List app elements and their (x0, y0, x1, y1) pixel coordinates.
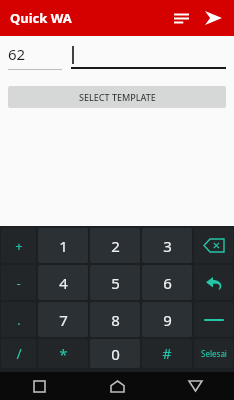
button[interactable]: Selesai (194, 339, 233, 368)
button[interactable]: Enter (194, 265, 233, 300)
button[interactable]: Send (198, 3, 228, 33)
staticText: 1 (59, 236, 68, 256)
button[interactable]: 9 (142, 302, 192, 337)
staticText: 0 (111, 344, 120, 364)
button[interactable] (71, 46, 226, 69)
button[interactable]: 5 (90, 265, 140, 300)
button[interactable]: # (142, 339, 192, 368)
staticText: 3 (163, 236, 172, 256)
staticText: / (16, 344, 22, 363)
button[interactable]: - (1, 265, 36, 300)
button[interactable]: Backspace (194, 228, 233, 263)
staticText: Quick WA (10, 9, 72, 27)
button[interactable]: . (1, 302, 36, 337)
other: Backspace (204, 239, 224, 252)
button[interactable]: 6 (142, 265, 192, 300)
button[interactable]: 4 (38, 265, 88, 300)
staticText: 6 (163, 273, 172, 293)
button[interactable]: * (38, 339, 88, 368)
staticText: 7 (59, 310, 68, 330)
button[interactable]: 1 (38, 228, 88, 263)
staticText: * (59, 344, 68, 364)
staticText: . (17, 311, 21, 329)
button[interactable]: 3 (142, 228, 192, 263)
button[interactable]: 62 (8, 44, 62, 70)
staticText: 2 (111, 236, 120, 256)
button[interactable]: Back (156, 372, 234, 400)
staticText: - (16, 274, 21, 292)
button[interactable]: SELECT TEMPLATE (8, 86, 226, 108)
staticText: 9 (163, 310, 172, 330)
staticText: 5 (111, 273, 120, 293)
button[interactable]: 2 (90, 228, 140, 263)
button[interactable]: Dash (194, 302, 233, 337)
button[interactable]: Recent apps (0, 372, 78, 400)
staticText: 4 (59, 273, 68, 293)
other: Dash (205, 316, 223, 324)
staticText: + (15, 237, 23, 255)
staticText: 62 (8, 44, 26, 64)
button[interactable]: / (1, 339, 36, 368)
button[interactable]: + (1, 228, 36, 263)
staticText: 8 (111, 310, 120, 330)
button[interactable]: 7 (38, 302, 88, 337)
staticText: SELECT TEMPLATE (79, 91, 156, 103)
button[interactable]: 8 (90, 302, 140, 337)
button[interactable]: 0 (90, 339, 140, 368)
button[interactable]: Sort (166, 3, 196, 33)
staticText: Selesai (201, 348, 227, 359)
staticText: # (162, 344, 172, 363)
button[interactable]: Home (78, 372, 156, 400)
other: Enter (204, 275, 224, 291)
